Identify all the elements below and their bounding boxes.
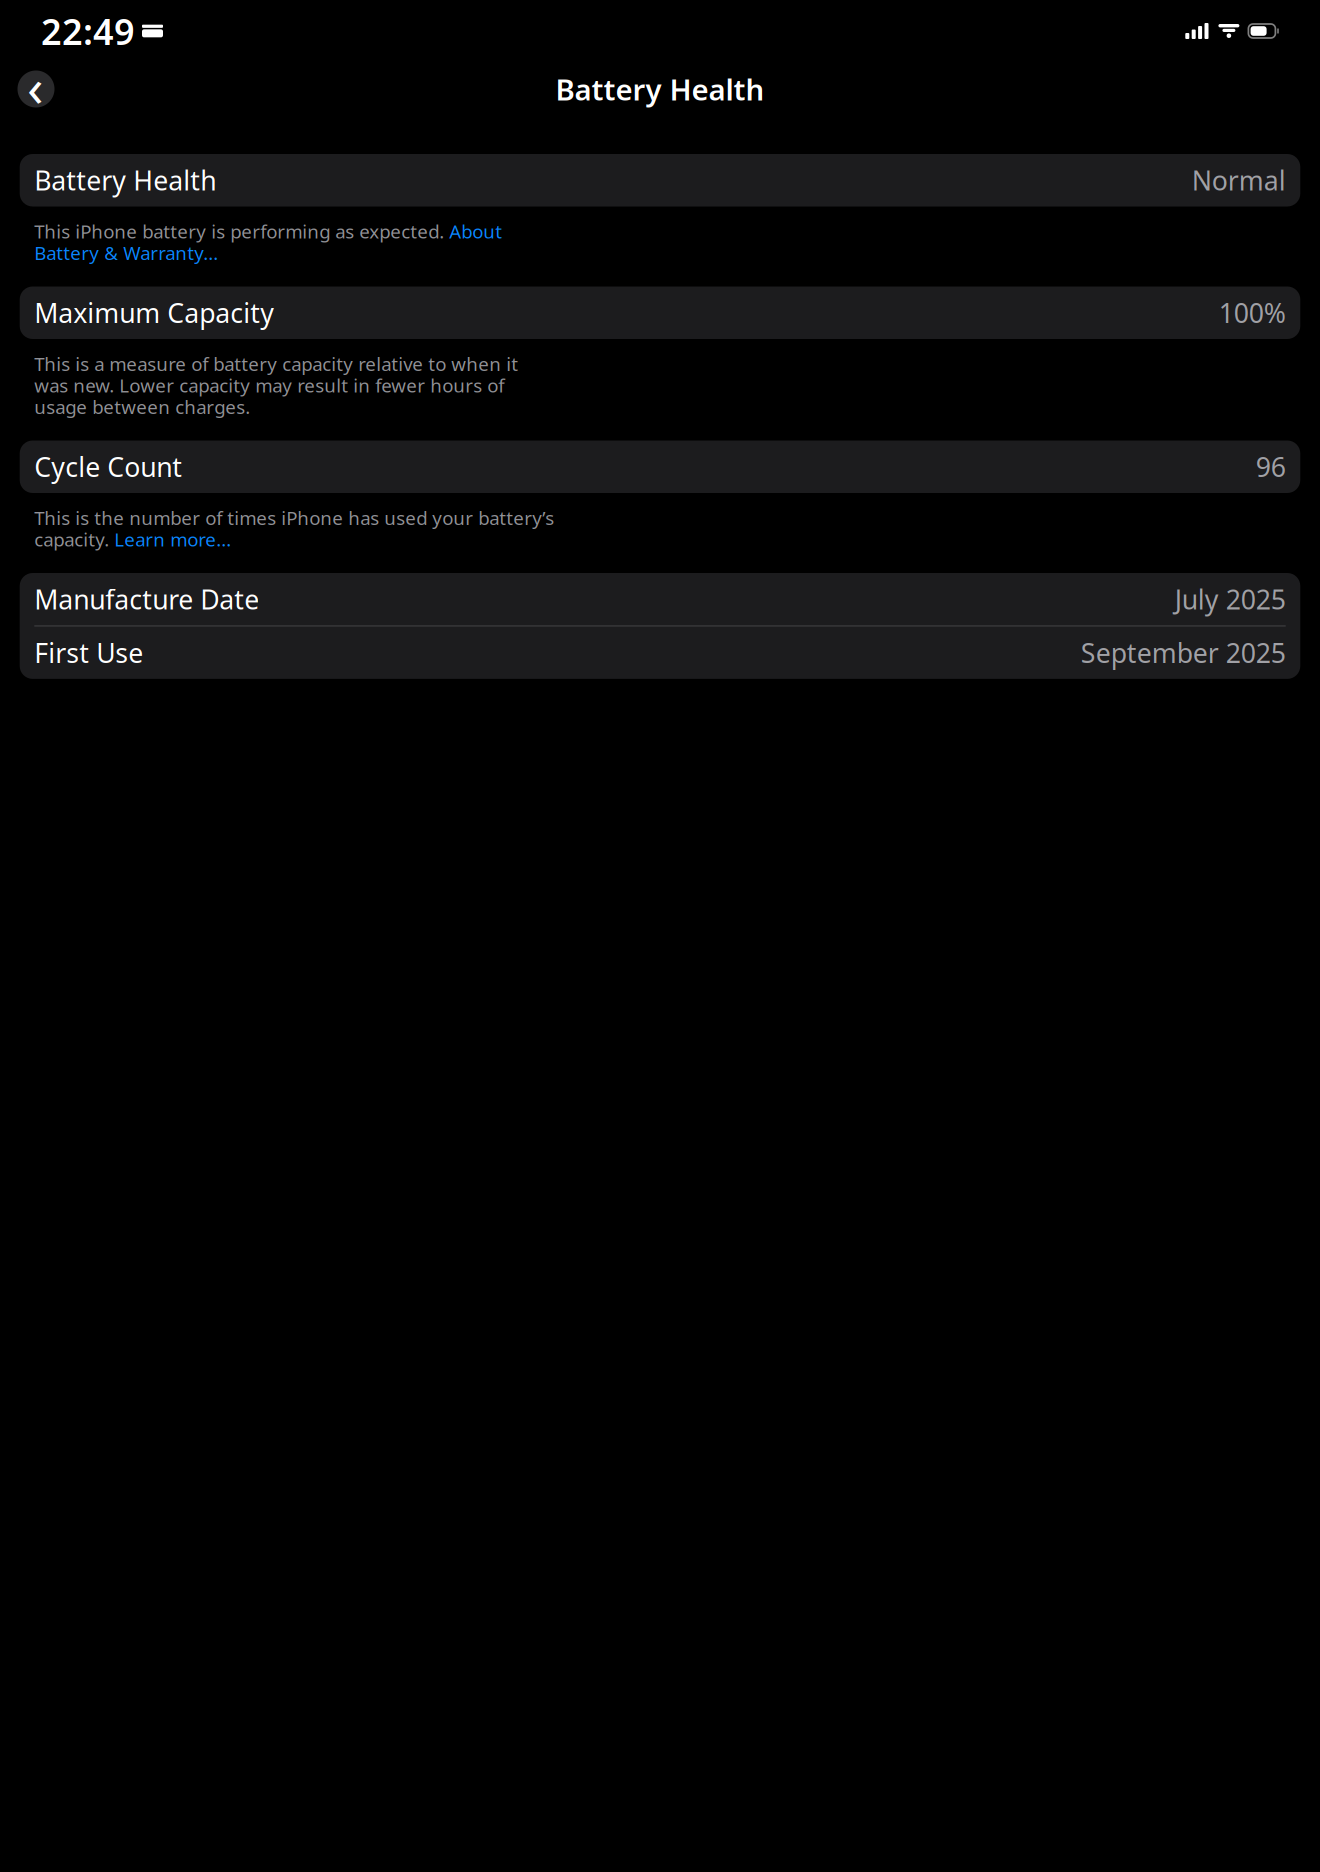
staticText: 96 bbox=[1256, 449, 1286, 484]
staticText: Battery Health bbox=[34, 162, 216, 198]
staticText: Maximum Capacity bbox=[34, 295, 274, 330]
staticText: 100% bbox=[1219, 295, 1286, 330]
staticText: Normal bbox=[1192, 162, 1286, 198]
button[interactable]: Cycle Count bbox=[20, 440, 1300, 493]
staticText: Manufacture Date bbox=[34, 581, 259, 617]
staticText: September 2025 bbox=[1081, 635, 1286, 670]
staticText: was new. Lower capacity may result in fe… bbox=[34, 373, 504, 398]
button[interactable]: Manufacture Date bbox=[20, 573, 1300, 625]
staticText: This is a measure of battery capacity re… bbox=[34, 351, 518, 376]
button[interactable]: Maximum Capacity bbox=[20, 286, 1300, 339]
staticText: capacity. bbox=[34, 527, 114, 552]
staticText: Cycle Count bbox=[34, 449, 182, 484]
staticText: 22:49 bbox=[41, 7, 135, 55]
button[interactable]: Back bbox=[17, 70, 54, 107]
button[interactable]: First Use bbox=[20, 626, 1300, 679]
staticText: Learn more... bbox=[114, 527, 231, 552]
staticText: July 2025 bbox=[1175, 581, 1286, 617]
staticText: About bbox=[449, 219, 502, 244]
staticText: usage between charges. bbox=[34, 394, 250, 419]
staticText: ‹ bbox=[27, 51, 44, 121]
staticText: This is the number of times iPhone has u… bbox=[34, 505, 554, 530]
staticText: This iPhone battery is performing as exp… bbox=[34, 219, 449, 244]
button[interactable]: Battery Health bbox=[20, 154, 1300, 206]
staticText: Battery & Warranty... bbox=[34, 240, 218, 265]
staticText: First Use bbox=[34, 635, 143, 670]
staticText: Battery Health bbox=[555, 69, 764, 108]
